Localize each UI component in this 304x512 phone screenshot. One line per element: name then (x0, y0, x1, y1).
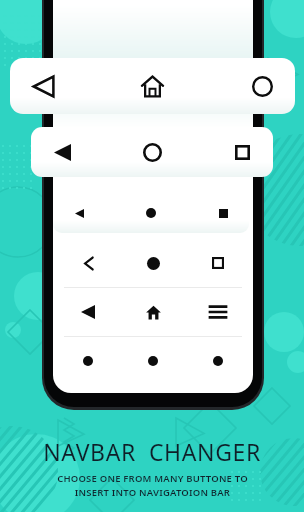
button[interactable]: Menu (201, 295, 235, 329)
button[interactable]: Home (135, 135, 169, 169)
button[interactable]: Recents (225, 135, 259, 169)
button[interactable]: Home (135, 69, 169, 103)
button[interactable]: Recents (201, 246, 235, 280)
button[interactable]: Back (45, 135, 79, 169)
button[interactable]: Back (31, 127, 273, 177)
button[interactable]: Home (137, 199, 165, 227)
staticText: CHOOSE ONE FROM MANY BUTTONE TO INSERT I… (57, 472, 248, 499)
button[interactable]: Recents (209, 199, 237, 227)
button[interactable]: Home (136, 344, 170, 378)
button[interactable]: Back (53, 337, 253, 385)
button[interactable]: Back (53, 192, 249, 233)
button[interactable]: Recents (245, 69, 279, 103)
button[interactable]: Home (136, 295, 170, 329)
button[interactable]: Back (10, 58, 295, 114)
button[interactable]: Back (71, 246, 105, 280)
staticText: NAVBAR CHANGER (43, 436, 261, 467)
button[interactable]: Back (26, 69, 60, 103)
button[interactable]: Back (71, 344, 105, 378)
button[interactable]: Recents (201, 344, 235, 378)
button[interactable]: Back (71, 295, 105, 329)
button[interactable]: Back (53, 239, 253, 287)
button[interactable]: Home (136, 246, 170, 280)
button[interactable]: Back (53, 288, 253, 336)
button[interactable]: Back (65, 199, 93, 227)
